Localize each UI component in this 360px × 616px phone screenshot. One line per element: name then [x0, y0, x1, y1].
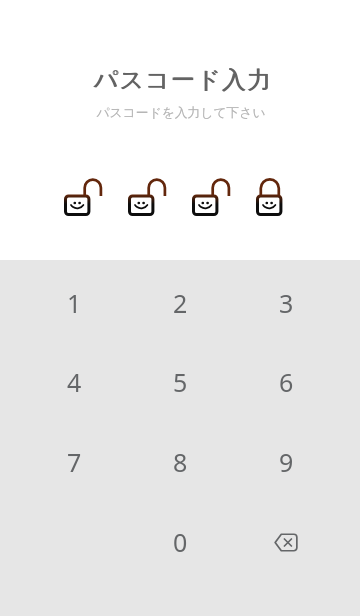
other: Empty passcode digit: [104, 170, 174, 222]
button[interactable]: 9: [233, 422, 339, 502]
button[interactable]: 8: [127, 422, 233, 502]
button[interactable]: 0: [127, 502, 233, 582]
staticText: パスコード入力: [93, 65, 272, 95]
staticText: 9: [279, 445, 294, 479]
staticText: パスコード入力: [94, 65, 273, 95]
staticText: パスコードを入力して下さい: [96, 105, 266, 121]
button[interactable]: 5: [127, 342, 233, 422]
button[interactable]: 6: [233, 342, 339, 422]
staticText: 3: [279, 286, 294, 320]
staticText: 5: [173, 365, 188, 399]
button[interactable]: 4: [21, 342, 127, 422]
staticText: 0: [173, 525, 188, 559]
button[interactable]: 3: [233, 263, 339, 343]
staticText: 6: [279, 365, 294, 399]
staticText: 7: [67, 445, 82, 479]
button[interactable]: 7: [21, 422, 127, 502]
button[interactable]: 2: [127, 263, 233, 343]
button[interactable]: 1: [21, 263, 127, 343]
other: Empty passcode digit: [40, 170, 110, 222]
staticText: 2: [173, 286, 188, 320]
staticText: 4: [67, 365, 82, 399]
button[interactable]: Delete: [233, 502, 339, 582]
staticText: 8: [173, 445, 188, 479]
other: Entered passcode digit: [232, 170, 302, 222]
staticText: 1: [67, 286, 82, 320]
other: Empty passcode digit: [168, 170, 238, 222]
